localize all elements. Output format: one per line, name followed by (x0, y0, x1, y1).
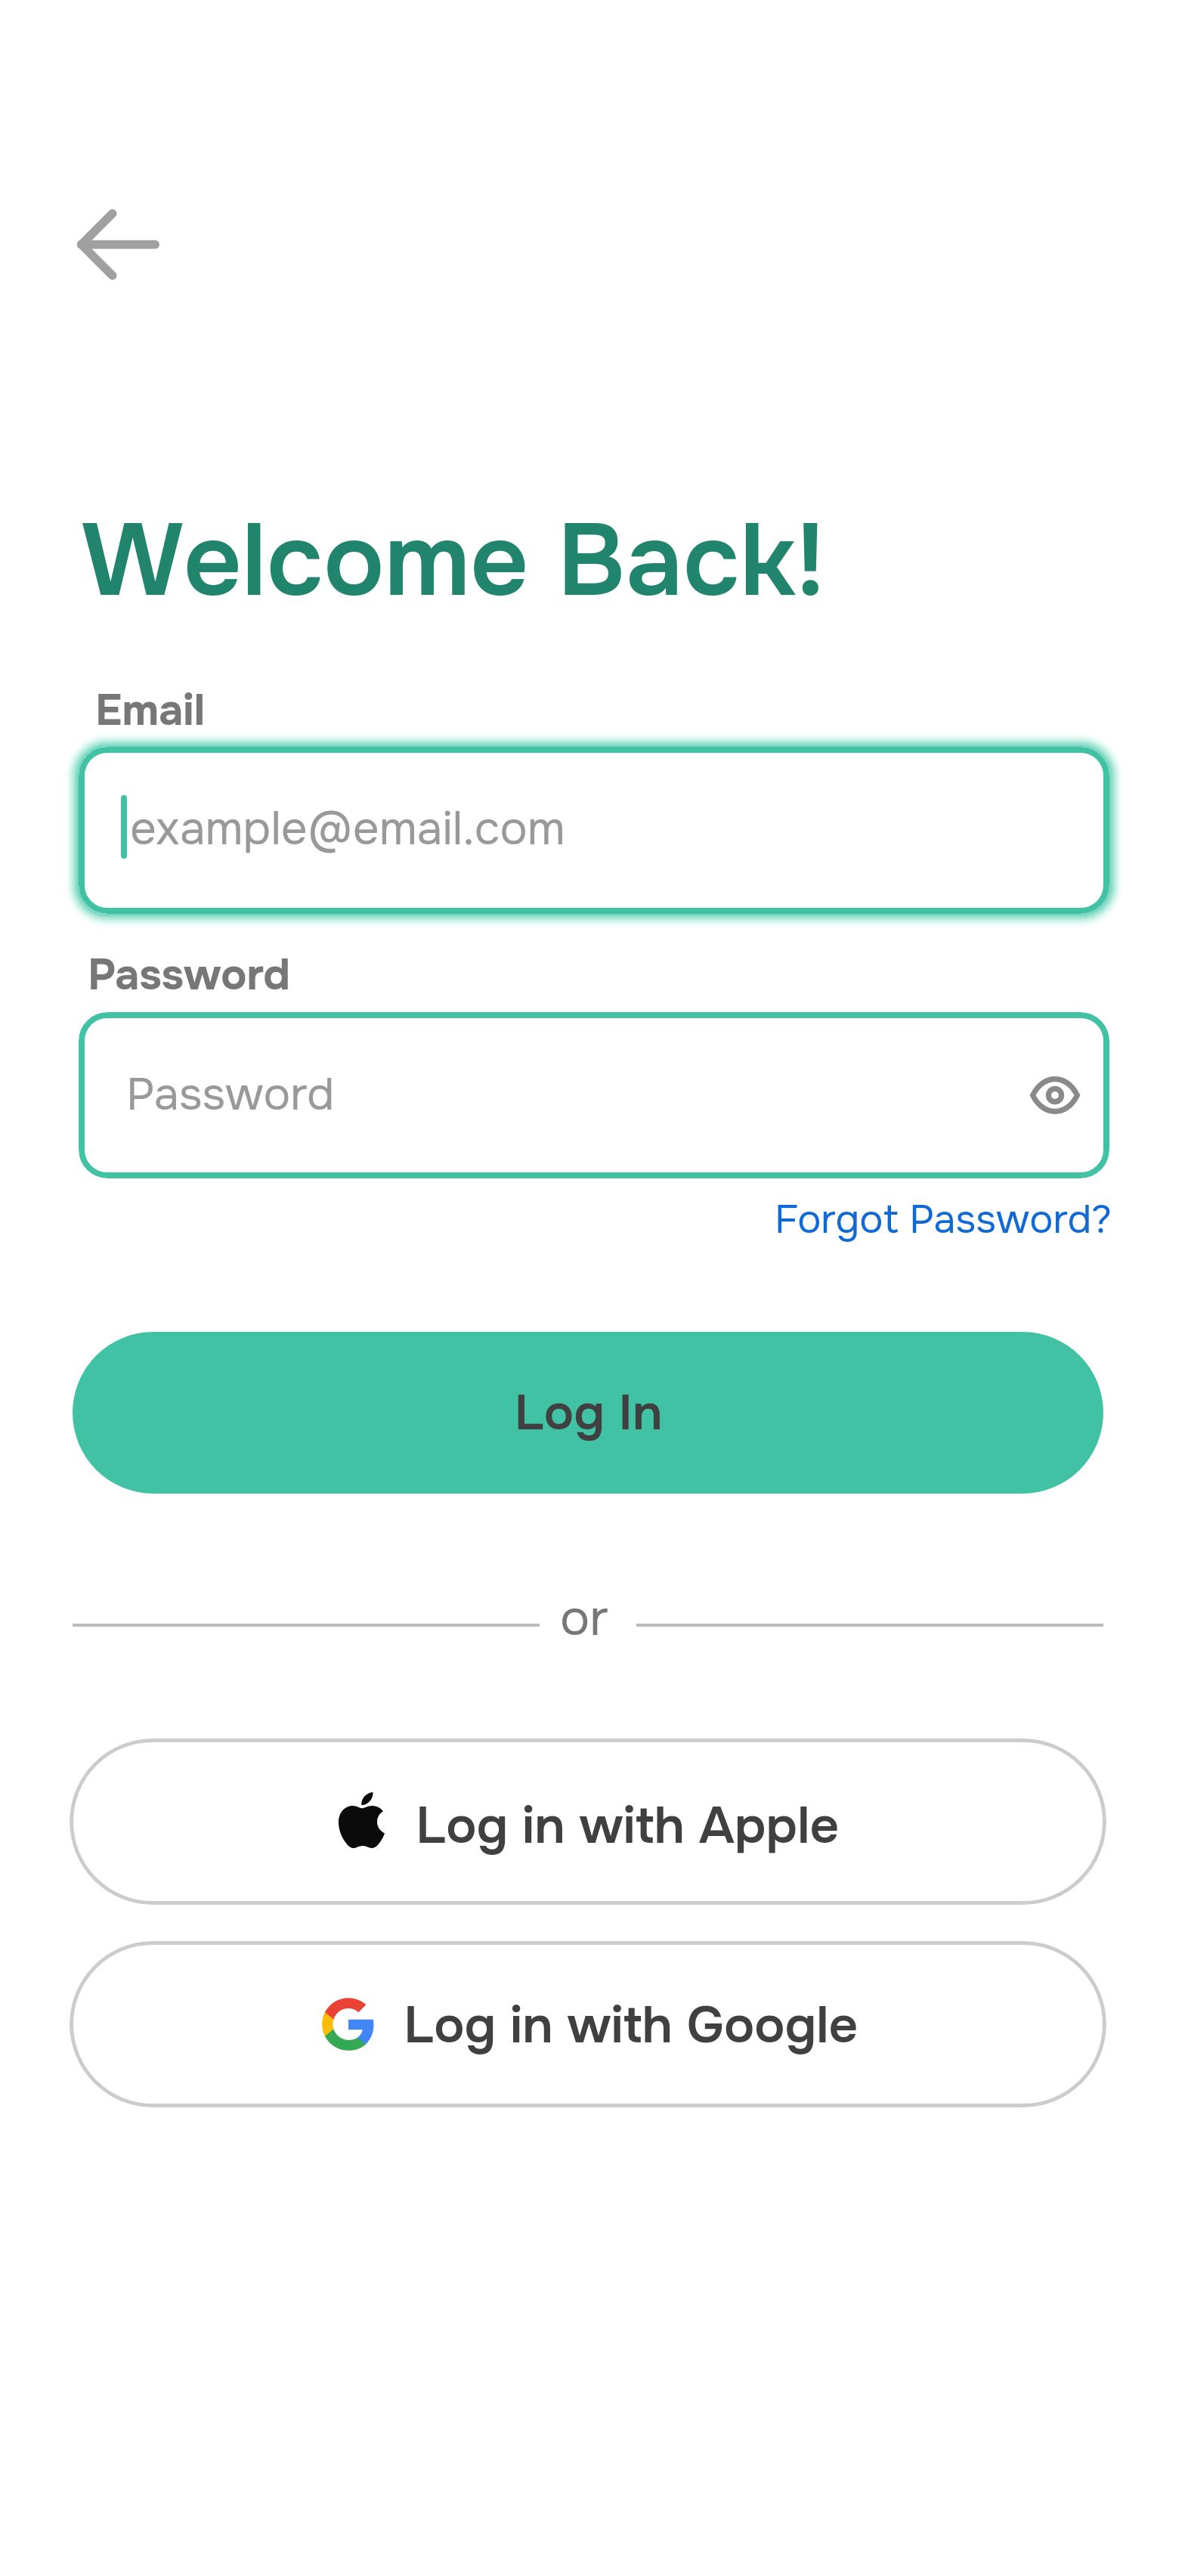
staticText: Password (126, 1066, 335, 1124)
staticText: example@email.com (130, 800, 565, 859)
button[interactable]: Show password (1011, 1051, 1099, 1139)
staticText: Log in with Google (404, 1993, 859, 2058)
staticText: Log in with Apple (416, 1794, 840, 1859)
staticText: Email (95, 683, 205, 738)
button[interactable]: example@email.com (79, 747, 1109, 914)
button[interactable]: Log In (73, 1332, 1103, 1494)
button[interactable]: Log in with Google (70, 1941, 1106, 2107)
staticText: Password (88, 948, 290, 1003)
button[interactable]: Back (59, 185, 177, 303)
button[interactable]: Forgot Password? (775, 1194, 1112, 1245)
button[interactable]: Log in with Apple (70, 1738, 1106, 1905)
staticText: Forgot Password? (775, 1194, 1112, 1245)
staticText: Log In (514, 1381, 663, 1444)
staticText: or (560, 1587, 608, 1650)
staticText: Welcome Back! (82, 496, 826, 626)
button[interactable]: Password (79, 1012, 1109, 1178)
